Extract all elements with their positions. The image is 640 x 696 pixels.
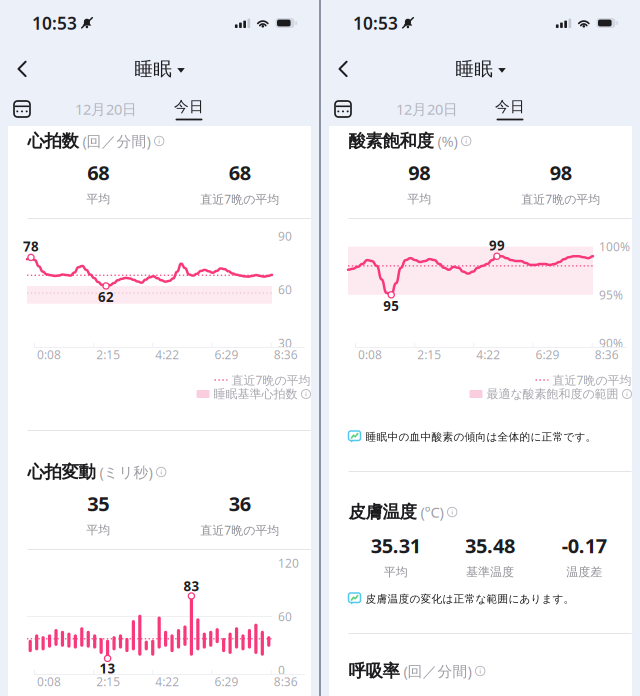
staticText: 最適な酸素飽和度の範囲 bbox=[486, 387, 618, 401]
staticText: 35 bbox=[87, 490, 109, 517]
staticText: 直近7晩の平均 bbox=[200, 522, 279, 538]
staticText: 4:22 bbox=[155, 346, 179, 362]
staticText: 睡眠 bbox=[134, 57, 172, 80]
staticText: 83 bbox=[183, 577, 199, 595]
staticText: 平均 bbox=[86, 523, 110, 537]
staticText: 68 bbox=[87, 159, 109, 186]
staticText: 78 bbox=[23, 237, 39, 255]
staticText: 120 bbox=[278, 555, 299, 571]
button[interactable]: 今日 bbox=[171, 98, 207, 120]
button[interactable]: 今日 bbox=[492, 98, 528, 120]
staticText: 直近7晩の平均 bbox=[521, 191, 600, 207]
staticText: 90 bbox=[278, 228, 292, 244]
staticText: 12月20日 bbox=[75, 99, 137, 119]
staticText: (回／分間) bbox=[403, 661, 471, 681]
staticText: 心拍変動 bbox=[27, 461, 95, 483]
staticText: 10:53 bbox=[32, 11, 77, 34]
button[interactable]: 睡眠 bbox=[126, 49, 193, 88]
staticText: 直近7晩の平均 bbox=[231, 372, 310, 388]
staticText: 60 bbox=[278, 281, 292, 297]
staticText: 0:08 bbox=[358, 346, 382, 362]
staticText: 60 bbox=[278, 608, 292, 624]
staticText: 4:22 bbox=[155, 673, 179, 689]
button[interactable]: 12月20日 bbox=[392, 94, 462, 124]
staticText: 8:36 bbox=[274, 346, 298, 362]
staticText: 6:29 bbox=[214, 673, 238, 689]
staticText: (回／分間) bbox=[82, 131, 150, 151]
staticText: 呼吸率 bbox=[348, 660, 399, 682]
staticText: 平均 bbox=[407, 192, 431, 206]
staticText: 68 bbox=[229, 159, 251, 186]
staticText: -0.17 bbox=[562, 532, 607, 559]
staticText: 今日 bbox=[495, 98, 525, 116]
staticText: 35.31 bbox=[371, 532, 421, 559]
staticText: 直近7晩の平均 bbox=[200, 191, 279, 207]
button[interactable]: カレンダー bbox=[0, 96, 36, 122]
button[interactable]: 12月20日 bbox=[71, 94, 141, 124]
staticText: 8:36 bbox=[274, 673, 298, 689]
staticText: 平均 bbox=[86, 192, 110, 206]
button[interactable]: 戻る bbox=[0, 52, 39, 85]
staticText: 今日 bbox=[174, 98, 204, 116]
staticText: 睡眠中の血中酸素の傾向は全体的に正常です。 bbox=[365, 430, 596, 443]
button[interactable]: 睡眠 bbox=[447, 49, 514, 88]
staticText: 98 bbox=[408, 159, 430, 186]
staticText: 6:29 bbox=[214, 346, 238, 362]
staticText: 100% bbox=[599, 239, 630, 254]
staticText: 0:08 bbox=[37, 346, 61, 362]
staticText: 皮膚温度の変化は正常な範囲にあります。 bbox=[365, 592, 574, 605]
staticText: (ミリ秒) bbox=[99, 462, 152, 482]
staticText: 睡眠 bbox=[455, 57, 493, 80]
staticText: 2:15 bbox=[96, 673, 120, 689]
staticText: 酸素飽和度 bbox=[348, 130, 433, 152]
staticText: 6:29 bbox=[535, 346, 559, 362]
staticText: (%) bbox=[437, 131, 457, 151]
staticText: 4:22 bbox=[476, 346, 500, 362]
staticText: 36 bbox=[229, 490, 251, 517]
staticText: 98 bbox=[550, 159, 572, 186]
staticText: 35.48 bbox=[465, 532, 515, 559]
staticText: 95% bbox=[599, 287, 623, 303]
staticText: 皮膚温度 bbox=[348, 501, 416, 523]
staticText: 2:15 bbox=[417, 346, 441, 362]
staticText: 0:08 bbox=[37, 673, 61, 689]
button[interactable]: カレンダー bbox=[321, 96, 357, 122]
staticText: 12月20日 bbox=[396, 99, 458, 119]
staticText: 10:53 bbox=[353, 11, 398, 34]
staticText: 心拍数 bbox=[27, 130, 78, 152]
staticText: 温度差 bbox=[566, 565, 602, 579]
staticText: 62 bbox=[98, 288, 114, 306]
staticText: 睡眠基準心拍数 bbox=[213, 387, 297, 401]
staticText: 8:36 bbox=[595, 346, 619, 362]
staticText: (°C) bbox=[420, 502, 443, 522]
staticText: 99 bbox=[489, 236, 505, 254]
staticText: 30 bbox=[278, 335, 292, 351]
staticText: 13 bbox=[100, 660, 116, 677]
staticText: 基準温度 bbox=[466, 565, 514, 579]
staticText: 95 bbox=[383, 297, 399, 315]
staticText: 直近7晩の平均 bbox=[552, 372, 631, 388]
staticText: 平均 bbox=[384, 565, 408, 579]
staticText: 90% bbox=[599, 335, 623, 351]
button[interactable]: 戻る bbox=[321, 52, 360, 85]
staticText: 0 bbox=[278, 662, 285, 678]
staticText: 2:15 bbox=[96, 346, 120, 362]
